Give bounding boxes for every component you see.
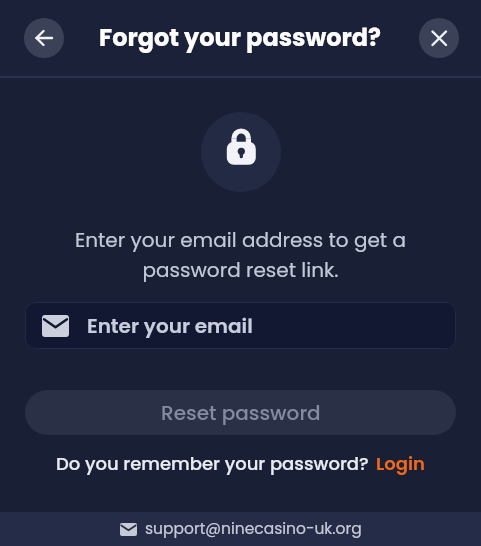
staticText: Reset password xyxy=(161,399,321,427)
staticText: support@ninecasino-uk.org xyxy=(145,518,362,540)
button[interactable] xyxy=(24,18,64,58)
button[interactable]: support@ninecasino-uk.org xyxy=(0,512,481,546)
staticText: Forgot your password? xyxy=(99,21,382,55)
button[interactable]: Enter your email xyxy=(25,302,456,349)
staticText: Do you remember your password? xyxy=(56,451,369,476)
button[interactable]: Reset password xyxy=(25,390,456,435)
staticText: Enter your email address to get a passwo… xyxy=(0,226,481,284)
staticText: Login xyxy=(376,451,425,476)
button[interactable] xyxy=(419,18,459,58)
button[interactable]: Login xyxy=(376,451,425,476)
staticText: Enter your email xyxy=(87,312,253,340)
